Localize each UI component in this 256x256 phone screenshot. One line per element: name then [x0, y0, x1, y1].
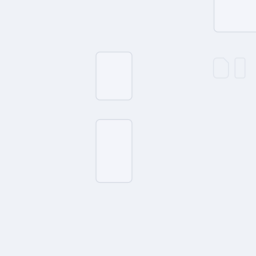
button[interactable]: First card — [96, 52, 132, 100]
button[interactable]: Page — [235, 58, 245, 78]
button[interactable]: Second card — [96, 119, 132, 182]
